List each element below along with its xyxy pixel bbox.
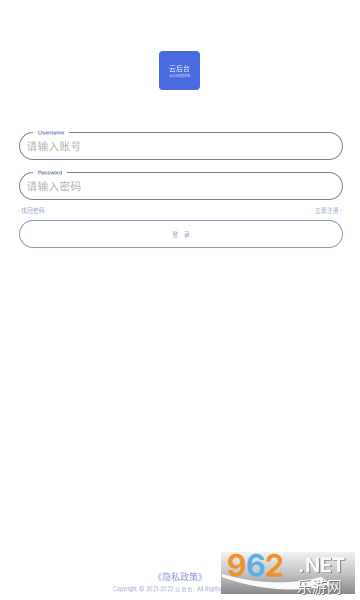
staticText: 《隐私政策》 (153, 570, 207, 583)
staticText: 登 (172, 230, 178, 238)
button[interactable]: 立即注册 › (315, 206, 342, 214)
staticText: 立即注册 › (315, 206, 342, 214)
staticText: Username (38, 129, 64, 136)
button[interactable]: ‹ 找回密码 (18, 206, 45, 214)
staticText: .NET (298, 553, 345, 577)
staticText: 请输入密码 (26, 178, 81, 193)
staticText: 请输入账号 (26, 138, 81, 153)
staticText: 乐游网 (297, 575, 342, 596)
staticText: 云后台管理系统 (169, 73, 190, 78)
staticText: 9 (227, 547, 246, 584)
button[interactable]: 《隐私政策》 (153, 570, 207, 583)
staticText: ‹ 找回密码 (18, 206, 45, 214)
button[interactable]: 登 (19, 220, 342, 247)
staticText: .NET (299, 554, 346, 578)
staticText: 2 (265, 547, 284, 584)
staticText: 乐游网 (298, 576, 343, 597)
staticText: 录 (184, 230, 190, 238)
staticText: 6 (246, 547, 265, 584)
staticText: Password (38, 169, 62, 176)
staticText: 云后台 (169, 63, 190, 73)
staticText: Copyright © 2021-2022 云后台. All Rights Re… (113, 586, 247, 593)
